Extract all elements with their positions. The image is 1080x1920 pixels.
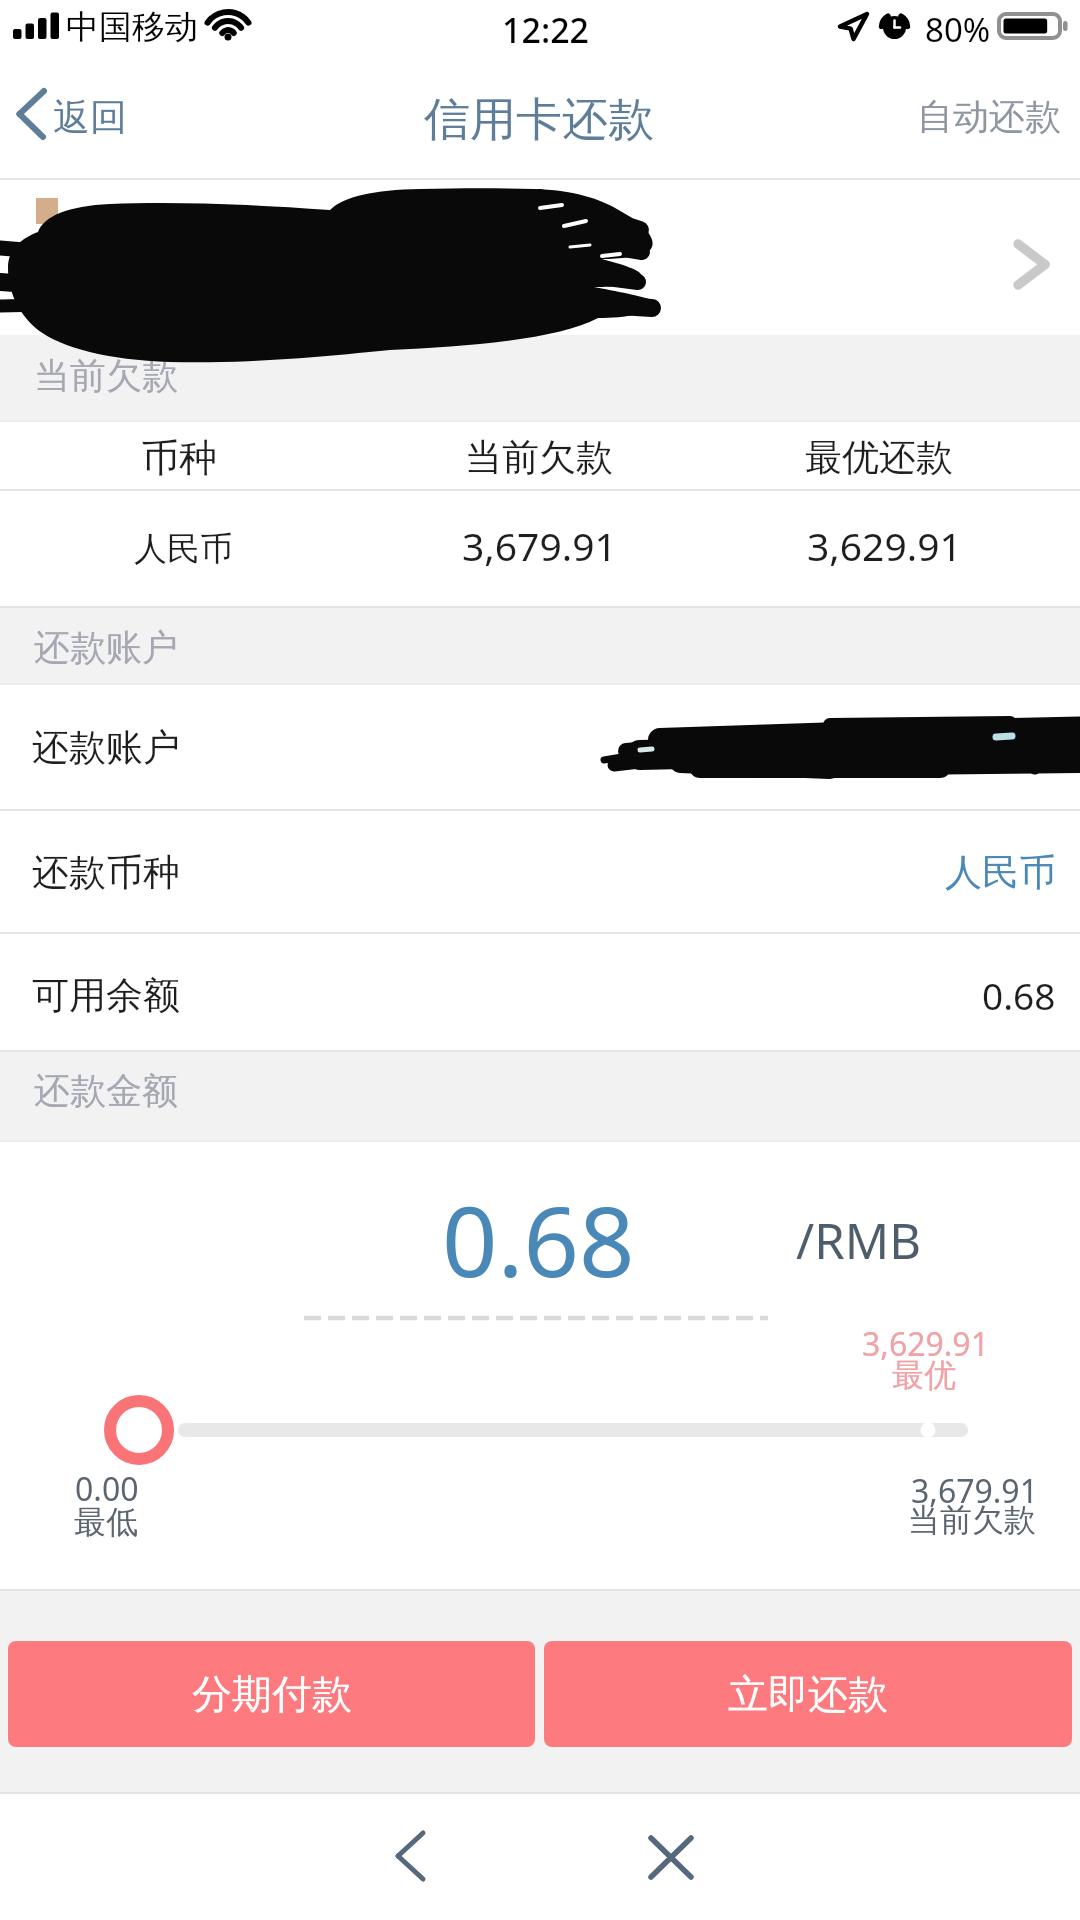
staticText: 还款金额	[34, 1068, 178, 1113]
staticText: 中国移动	[66, 6, 198, 48]
button[interactable]: 分期付款	[8, 1641, 535, 1747]
staticText: 信用卡还款	[424, 91, 654, 149]
button[interactable]: 信用卡详情	[0, 180, 1080, 335]
staticText: 12:22	[502, 7, 590, 53]
staticText: 最优	[892, 1355, 956, 1395]
staticText: 当前欠款	[465, 434, 613, 481]
button[interactable]: 还款币种	[0, 812, 1080, 932]
staticText: 3,679.91	[462, 519, 617, 572]
button[interactable]: 自动还款	[899, 77, 1079, 156]
staticText: 人民币	[134, 528, 233, 570]
staticText: 人民币	[945, 849, 1056, 896]
staticText: 还款币种	[32, 849, 180, 896]
staticText: 80%	[925, 7, 991, 52]
button[interactable]: 关闭	[639, 1826, 703, 1890]
staticText: 当前欠款	[908, 1500, 1036, 1540]
staticText: 返回	[53, 94, 127, 141]
staticText: 0.00	[75, 1467, 139, 1511]
button[interactable]: 返回	[4, 75, 145, 153]
button[interactable]: 还款账户	[0, 685, 1080, 809]
button[interactable]: 立即还款	[544, 1641, 1072, 1747]
staticText: 当前欠款	[34, 353, 178, 398]
staticText: 还款账户	[32, 724, 180, 771]
staticText: 自动还款	[917, 94, 1061, 139]
staticText: 3,629.91	[862, 1322, 989, 1366]
staticText: 币种	[141, 434, 217, 482]
staticText: 可用余额	[32, 972, 180, 1019]
staticText: 立即还款	[728, 1669, 888, 1719]
staticText: 最低	[74, 1502, 138, 1542]
staticText: 还款账户	[34, 625, 178, 670]
staticText: 最优还款	[805, 434, 953, 481]
button[interactable]: 返回	[386, 1821, 436, 1885]
staticText: 分期付款	[192, 1669, 352, 1719]
staticText: 3,629.91	[807, 519, 962, 572]
staticText: /RMB	[796, 1207, 921, 1274]
staticText: 3,679.91	[911, 1469, 1038, 1513]
staticText: 0.68	[442, 1173, 635, 1305]
button[interactable]: 可用余额	[0, 938, 1080, 1052]
staticText: 0.68	[982, 970, 1056, 1020]
